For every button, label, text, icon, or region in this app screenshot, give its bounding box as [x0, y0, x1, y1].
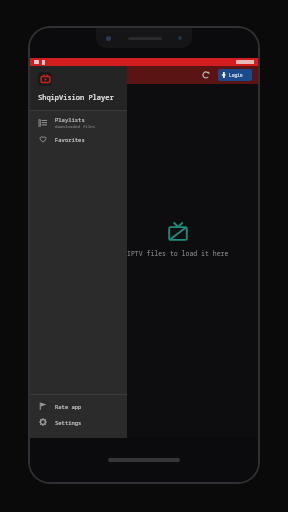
staticText: Login [229, 72, 243, 78]
button[interactable]: Favorites [30, 131, 127, 147]
button[interactable]: Playlists [30, 115, 127, 131]
staticText: ShqipVision Player [38, 93, 114, 103]
button[interactable]: Refresh [198, 67, 214, 83]
staticText: Playlists [55, 116, 85, 123]
button[interactable]: Rate app [30, 398, 127, 414]
staticText: IPTV files to load it here [127, 249, 229, 258]
staticText: Favorites [55, 136, 85, 143]
staticText: Settings [55, 419, 82, 426]
button[interactable]: Login [218, 69, 252, 81]
button[interactable]: Settings [30, 414, 127, 430]
staticText: downloaded files [55, 124, 96, 130]
staticText: Rate app [55, 403, 82, 410]
